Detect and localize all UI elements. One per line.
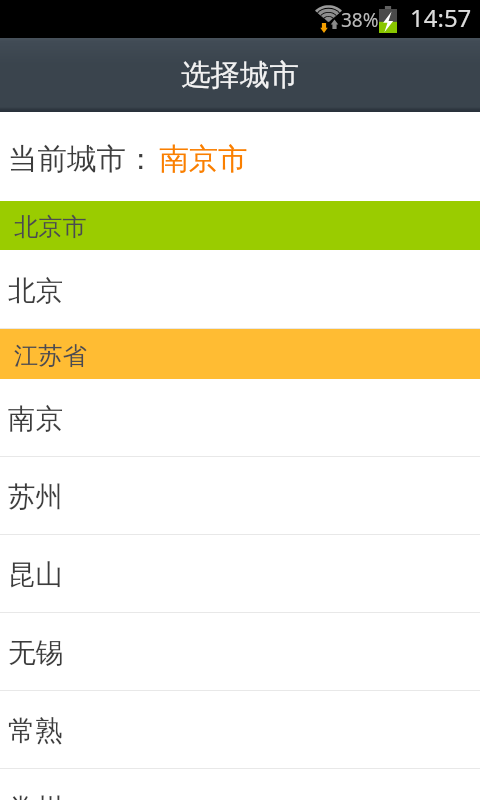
staticText: 南京	[8, 402, 63, 437]
staticText: 38%	[341, 7, 379, 33]
other: Wi-Fi and battery status	[0, 0, 480, 38]
staticText: 选择城市	[181, 57, 299, 94]
button[interactable]: 苏州	[0, 457, 480, 534]
button[interactable]: 北京	[0, 250, 480, 328]
staticText: 江苏省	[14, 341, 87, 371]
button[interactable]: 无锡	[0, 613, 480, 690]
staticText: 昆山	[8, 558, 63, 593]
staticText: 14:57	[410, 1, 472, 34]
button[interactable]: 昆山	[0, 535, 480, 612]
staticText: 常州	[8, 792, 63, 800]
staticText: 南京市	[159, 141, 248, 178]
staticText: 北京市	[14, 212, 87, 242]
staticText: 常熟	[8, 714, 63, 749]
staticText: 苏州	[8, 480, 63, 515]
button[interactable]: 南京	[0, 379, 480, 456]
staticText: 无锡	[8, 636, 63, 671]
button[interactable]: 常州	[0, 769, 480, 800]
staticText: 北京	[8, 274, 63, 309]
button[interactable]: 当前城市：	[0, 112, 480, 201]
staticText: 当前城市：	[8, 141, 156, 178]
button[interactable]: 常熟	[0, 691, 480, 768]
